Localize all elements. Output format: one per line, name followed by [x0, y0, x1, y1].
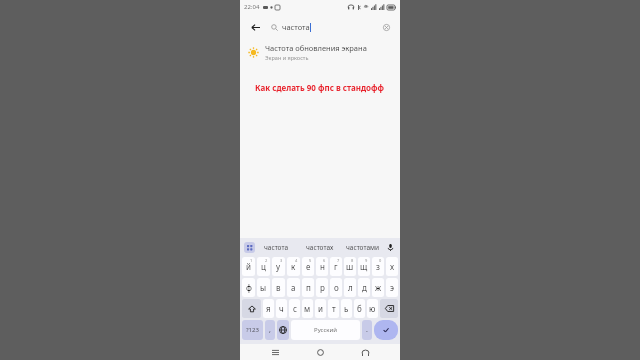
button[interactable]: Backspace — [380, 299, 398, 318]
button[interactable]: р — [316, 278, 328, 297]
staticText: , — [269, 325, 271, 335]
button[interactable]: частотами — [341, 238, 384, 256]
staticText: к — [291, 261, 296, 272]
button[interactable]: д — [358, 278, 370, 297]
staticText: о — [334, 282, 339, 293]
button[interactable]: с — [289, 299, 300, 318]
staticText: 6 — [323, 258, 326, 263]
staticText: 7 — [337, 258, 340, 263]
button[interactable]: Period — [362, 320, 372, 340]
button[interactable]: ж — [372, 278, 384, 297]
button[interactable]: б — [354, 299, 365, 318]
staticText: з — [376, 261, 380, 272]
staticText: р — [320, 282, 325, 293]
button[interactable]: ы — [257, 278, 270, 297]
staticText: й — [246, 261, 251, 272]
button[interactable]: Home — [310, 344, 330, 360]
button[interactable]: щ — [358, 257, 370, 276]
button[interactable]: Comma — [265, 320, 275, 340]
staticText: 5 — [309, 258, 312, 263]
button[interactable]: н — [316, 257, 328, 276]
button[interactable]: у — [272, 257, 285, 276]
button[interactable]: к — [287, 257, 300, 276]
staticText: 22:04 — [244, 3, 260, 11]
staticText: Русский — [314, 326, 337, 334]
staticText: частота — [264, 243, 289, 252]
button[interactable]: ь — [341, 299, 352, 318]
staticText: б — [357, 303, 362, 314]
button[interactable]: Keyboard menu — [244, 242, 255, 253]
staticText: э — [390, 282, 394, 293]
button[interactable]: э — [386, 278, 398, 297]
staticText: 1 — [250, 258, 253, 263]
staticText: я — [266, 303, 271, 314]
staticText: ь — [344, 303, 349, 314]
staticText: Частота обновления экрана — [265, 43, 367, 53]
button[interactable]: х — [386, 257, 398, 276]
button[interactable]: ш — [344, 257, 356, 276]
button[interactable]: й — [242, 257, 255, 276]
staticText: г — [334, 261, 338, 272]
button[interactable]: ю — [367, 299, 378, 318]
button[interactable]: ц — [257, 257, 270, 276]
button[interactable]: частота — [267, 18, 378, 36]
button[interactable]: з — [372, 257, 384, 276]
staticText: 9 — [365, 258, 368, 263]
button[interactable]: Back — [355, 344, 375, 360]
button[interactable]: и — [315, 299, 326, 318]
staticText: а — [291, 282, 296, 293]
staticText: п — [306, 282, 311, 293]
staticText: т — [332, 303, 336, 314]
button[interactable]: ч — [276, 299, 287, 318]
staticText: д — [362, 282, 367, 293]
button[interactable]: Частота обновления экрана — [240, 40, 400, 64]
button[interactable]: Clear — [378, 19, 394, 35]
button[interactable]: Shift — [242, 299, 261, 318]
button[interactable]: частотах — [298, 238, 341, 256]
staticText: ю — [369, 303, 376, 314]
button[interactable]: я — [263, 299, 274, 318]
button[interactable]: Back — [246, 18, 264, 36]
staticText: 4 — [295, 258, 298, 263]
staticText: частота — [282, 22, 310, 32]
button[interactable]: м — [302, 299, 313, 318]
staticText: 0 — [379, 258, 382, 263]
staticText: ч — [279, 303, 284, 314]
staticText: у — [276, 261, 281, 272]
staticText: е — [306, 261, 311, 272]
staticText: 8 — [351, 258, 354, 263]
button[interactable]: в — [272, 278, 285, 297]
staticText: ш — [346, 261, 354, 272]
button[interactable]: ф — [242, 278, 255, 297]
staticText: м — [304, 303, 311, 314]
button[interactable]: а — [287, 278, 300, 297]
button[interactable]: Русский — [291, 320, 360, 340]
staticText: щ — [360, 261, 368, 272]
button[interactable]: Change language — [277, 320, 289, 340]
button[interactable]: о — [330, 278, 342, 297]
button[interactable]: п — [302, 278, 314, 297]
staticText: частотами — [346, 243, 380, 252]
button[interactable]: л — [344, 278, 356, 297]
staticText: ф — [246, 282, 252, 293]
button[interactable]: ?123 — [242, 320, 263, 340]
button[interactable]: Enter — [374, 320, 398, 340]
staticText: 2 — [265, 258, 268, 263]
staticText: частотах — [306, 243, 334, 252]
button[interactable]: Recent apps — [265, 344, 285, 360]
staticText: с — [293, 303, 297, 314]
staticText: х — [390, 261, 395, 272]
staticText: н — [320, 261, 325, 272]
staticText: ы — [260, 282, 267, 293]
button[interactable]: частота — [255, 238, 298, 256]
staticText: и — [318, 303, 323, 314]
staticText: ж — [375, 282, 382, 293]
button[interactable]: г — [330, 257, 342, 276]
staticText: Экран и яркость — [265, 54, 309, 61]
button[interactable]: е — [302, 257, 314, 276]
staticText: л — [348, 282, 353, 293]
button[interactable]: т — [328, 299, 339, 318]
button[interactable]: Voice input — [384, 241, 396, 253]
staticText: ц — [261, 261, 266, 272]
staticText: ?123 — [246, 326, 259, 334]
